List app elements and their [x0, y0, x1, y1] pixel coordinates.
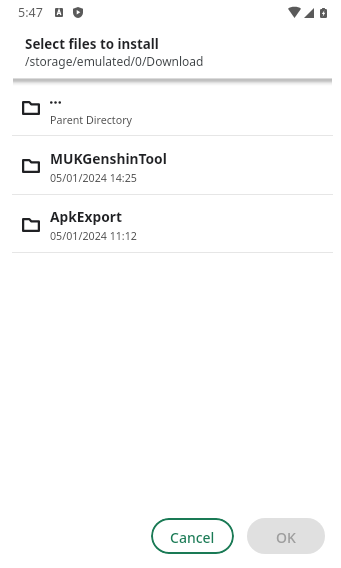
staticText: 05/01/2024 11:12: [50, 229, 137, 244]
staticText: /storage/emulated/0/Download: [25, 53, 204, 69]
staticText: Select files to install: [25, 35, 159, 53]
staticText: OK: [276, 528, 296, 547]
staticText: ApkExport: [50, 207, 123, 226]
staticText: Cancel: [170, 528, 215, 547]
other: Play Protect: [73, 7, 83, 18]
button[interactable]: MUKGenshinTool: [0, 136, 341, 195]
button[interactable]: Cancel: [151, 518, 234, 554]
button[interactable]: ApkExport: [0, 195, 341, 253]
staticText: MUKGenshinTool: [50, 149, 167, 168]
staticText: Parent Directory: [50, 113, 133, 128]
staticText: 05/01/2024 14:25: [50, 171, 137, 186]
other: App notification: [55, 8, 63, 17]
staticText: 5:47: [18, 4, 43, 21]
button[interactable]: OK: [247, 518, 325, 554]
button[interactable]: Parent Directory: [0, 78, 341, 136]
